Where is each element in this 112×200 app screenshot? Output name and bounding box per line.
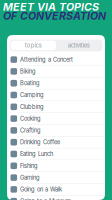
staticText: Drinking Coffee [20, 139, 60, 146]
staticText: Cooking [20, 115, 41, 122]
staticText: Clubbing [20, 103, 44, 110]
staticText: Camping [20, 91, 44, 98]
button[interactable]: Cooking [7, 113, 105, 124]
staticText: Going to a Museum [20, 198, 71, 200]
button[interactable]: Going on a Walk [7, 184, 105, 195]
staticText: Attending a Concert [20, 56, 73, 63]
staticText: Crafting [20, 127, 41, 134]
staticText: Gaming [20, 174, 40, 181]
staticText: OF CONVERSATION [3, 9, 106, 22]
button[interactable]: Eating Lunch [7, 148, 105, 160]
staticText: Going on a Walk [20, 186, 62, 193]
button[interactable]: Going to a Museum [7, 195, 105, 200]
button[interactable]: Camping [7, 89, 105, 101]
button[interactable]: Boating [7, 77, 105, 89]
button[interactable]: Fishing [7, 160, 105, 171]
staticText: topics [25, 42, 42, 49]
button[interactable]: Drinking Coffee [7, 136, 105, 148]
button[interactable]: Attending a Concert [7, 54, 105, 65]
button[interactable]: Gaming [7, 172, 105, 183]
button[interactable]: Clubbing [7, 101, 105, 112]
button[interactable]: topics [11, 41, 56, 50]
staticText: Fishing [20, 162, 38, 169]
staticText: Biking [20, 68, 36, 75]
button[interactable]: Biking [7, 66, 105, 77]
button[interactable]: activities [56, 41, 101, 50]
staticText: Boating [20, 80, 40, 87]
staticText: MEET VIA TOPICS [3, 0, 99, 13]
staticText: activities [68, 42, 90, 49]
button[interactable]: Crafting [7, 125, 105, 136]
staticText: Eating Lunch [20, 150, 53, 157]
